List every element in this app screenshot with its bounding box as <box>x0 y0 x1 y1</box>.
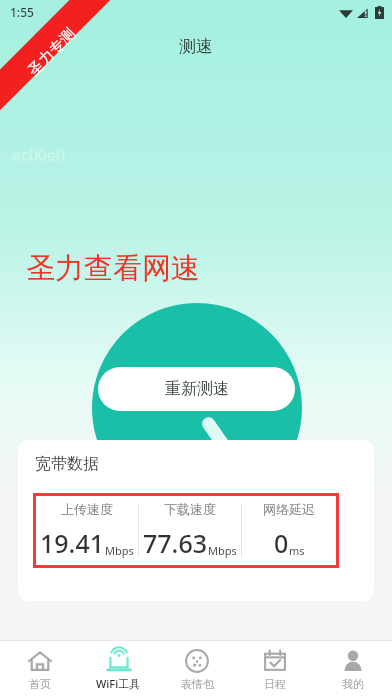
other: 首页 <box>27 648 53 674</box>
staticText: 日程 <box>264 677 286 691</box>
staticText: 上传速度 <box>61 501 113 517</box>
staticText: 表情包 <box>181 677 214 691</box>
staticText: 0 <box>274 526 289 560</box>
staticText: 下载速度 <box>164 501 216 517</box>
button[interactable]: 表情包 <box>158 641 236 697</box>
staticText: ms <box>289 543 305 558</box>
staticText: Mbps <box>105 543 134 558</box>
staticText: 圣力专测 <box>24 25 80 80</box>
button[interactable]: WiFi工具 <box>79 641 158 697</box>
staticText: Mbps <box>208 543 237 558</box>
staticText: 测速 <box>179 36 213 57</box>
button[interactable]: 首页 <box>0 641 79 697</box>
other: 日程 <box>262 648 288 674</box>
other: WiFi工具 <box>106 647 132 673</box>
staticText: 首页 <box>29 677 51 691</box>
staticText: 77.63 <box>143 526 208 560</box>
button[interactable]: 我的 <box>314 641 392 697</box>
staticText: 19.41 <box>40 526 105 560</box>
staticText: ac00e0 <box>12 144 66 166</box>
staticText: 我的 <box>342 677 364 691</box>
staticText: 网络延迟 <box>263 501 315 517</box>
staticText: 重新测速 <box>165 379 229 399</box>
staticText: 宽带数据 <box>35 454 99 474</box>
button[interactable]: 日程 <box>236 641 314 697</box>
other: 表情包 <box>184 648 210 674</box>
other: 我的 <box>340 648 366 674</box>
button[interactable]: 重新测速 <box>98 367 295 411</box>
staticText: WiFi工具 <box>96 676 141 691</box>
staticText: 1:55 <box>10 4 34 20</box>
staticText: 圣力查看网速 <box>26 250 200 287</box>
